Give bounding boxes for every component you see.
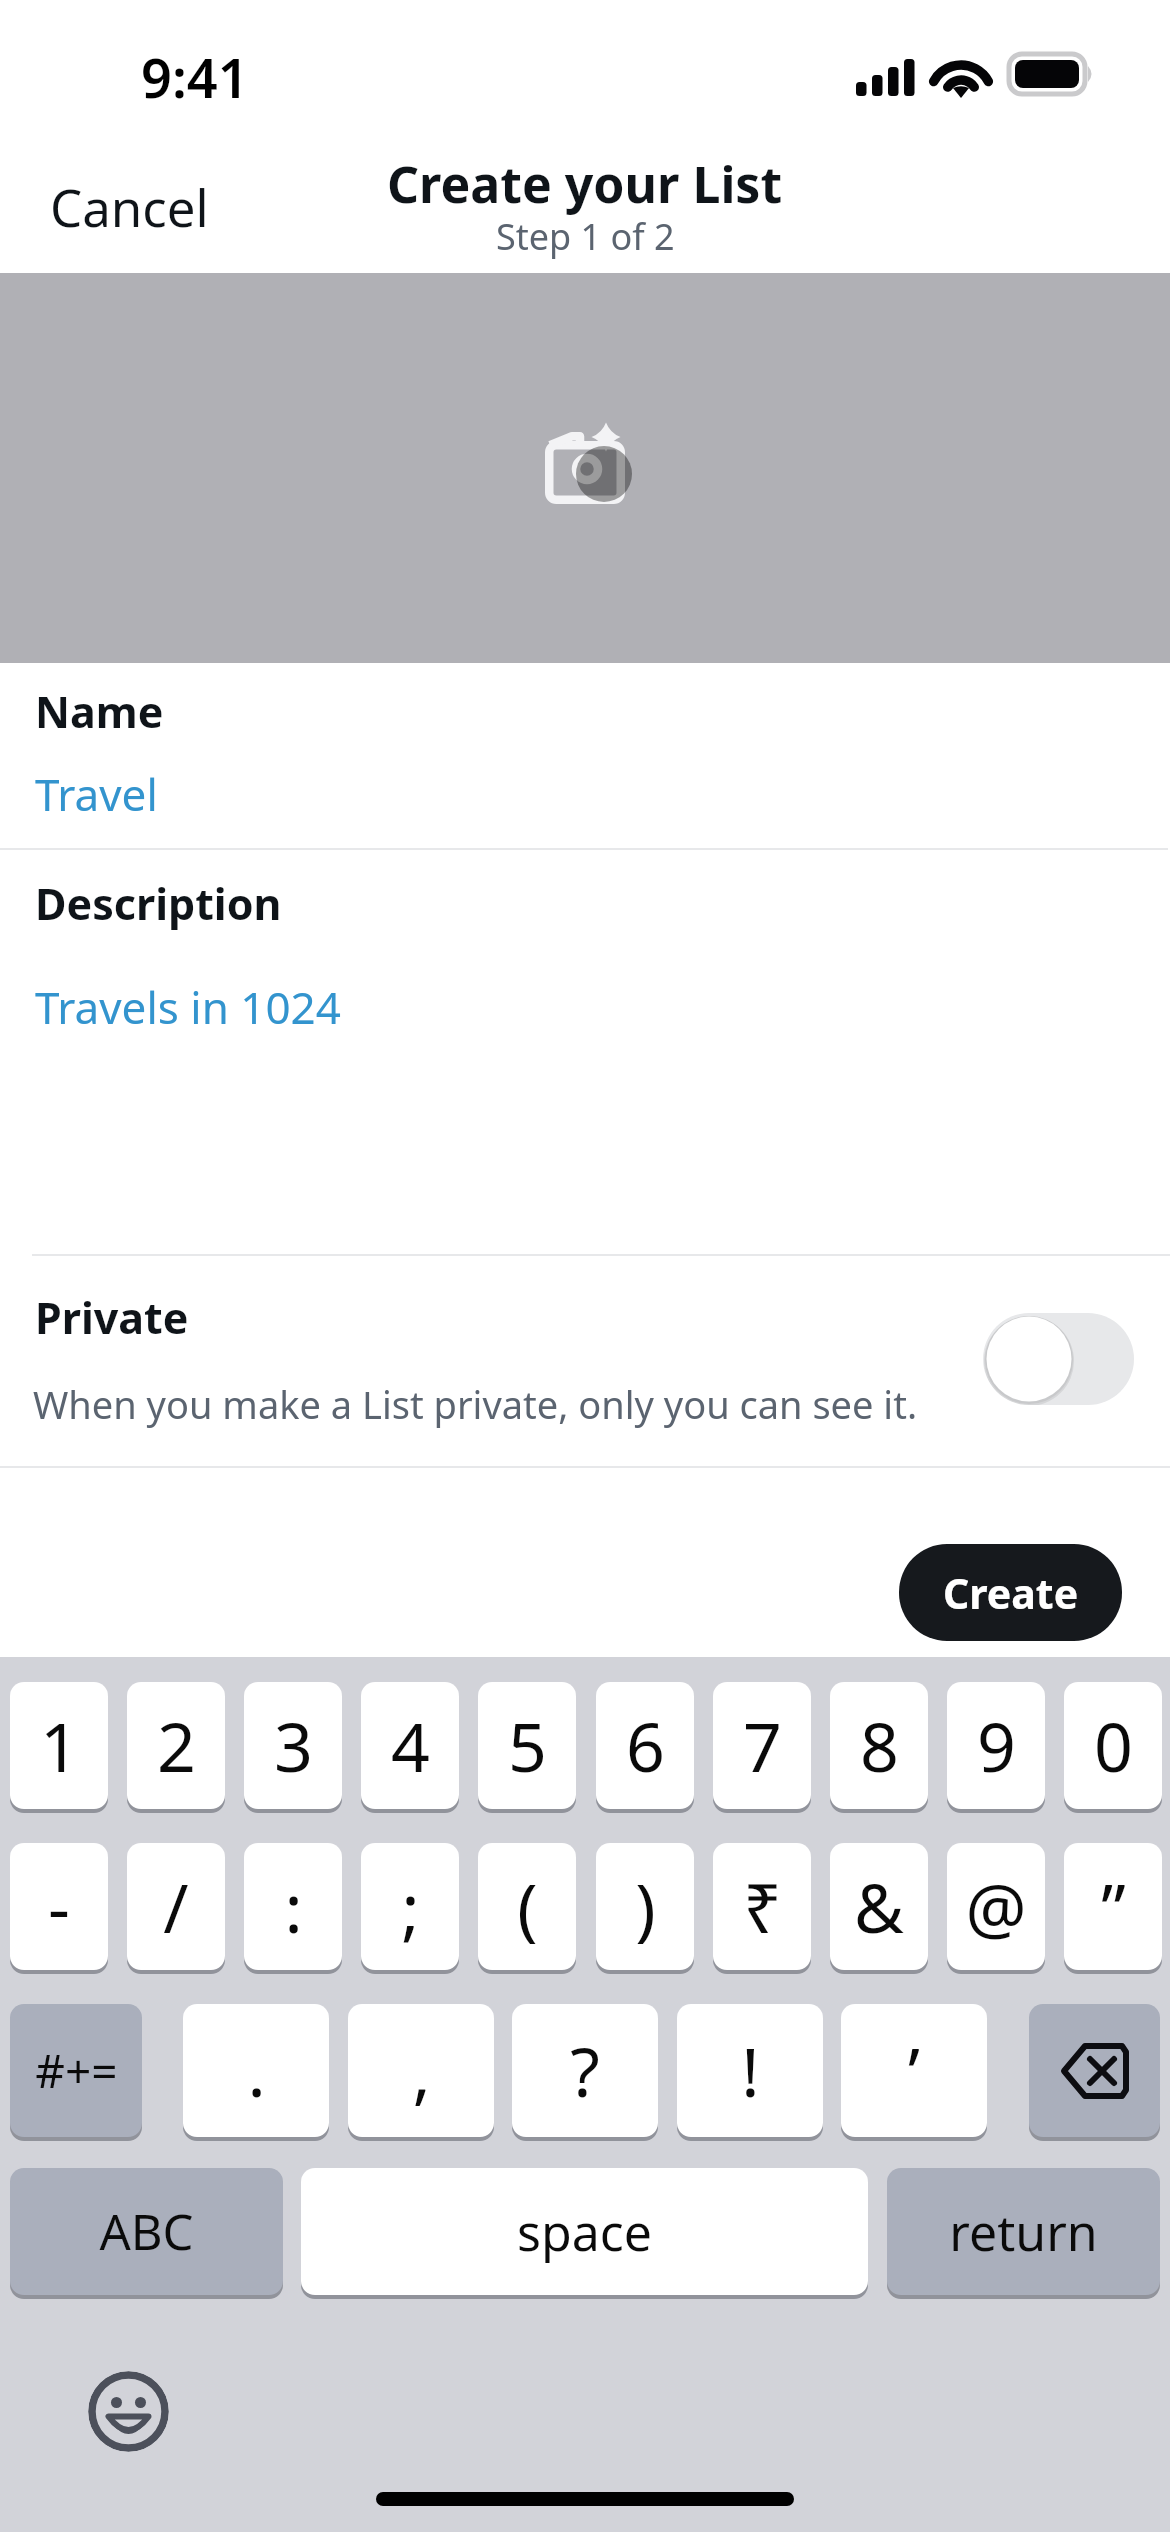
button[interactable]: Delete (1029, 2004, 1160, 2137)
button[interactable]: 2 (127, 1682, 225, 1809)
button[interactable]: ” (1064, 1843, 1162, 1970)
staticText: ; (401, 1860, 420, 1953)
staticText: 1 (40, 1699, 79, 1792)
staticText: - (48, 1860, 70, 1953)
button[interactable]: ) (596, 1843, 694, 1970)
staticText: return (949, 2198, 1098, 2266)
button[interactable]: Add list photo (0, 273, 1170, 663)
button[interactable]: 5 (478, 1682, 576, 1809)
staticText: : (284, 1860, 303, 1953)
staticText: / (163, 1860, 189, 1953)
staticText: ! (741, 2024, 760, 2117)
button[interactable]: Private (0, 1252, 1170, 1462)
button[interactable]: Description (0, 849, 1170, 1251)
button[interactable]: @ (947, 1843, 1045, 1970)
staticText: 8 (860, 1699, 899, 1792)
staticText: 4 (391, 1699, 430, 1792)
staticText: space (517, 2198, 652, 2266)
staticText: @ (965, 1860, 1027, 1953)
staticText: , (412, 2024, 431, 2117)
button[interactable]: 9 (947, 1682, 1045, 1809)
staticText: 3 (274, 1699, 313, 1792)
button[interactable]: Emoji keyboard (88, 2371, 169, 2452)
staticText: Step 1 of 2 (496, 212, 675, 261)
button[interactable]: return (887, 2168, 1160, 2295)
button[interactable]: Create (899, 1544, 1122, 1641)
button[interactable]: Private toggle (983, 1313, 1134, 1405)
button[interactable]: ₹ (713, 1843, 811, 1970)
staticText: & (854, 1860, 904, 1953)
staticText: Create (943, 1565, 1079, 1621)
button[interactable]: / (127, 1843, 225, 1970)
button[interactable]: Name (0, 663, 1170, 848)
staticText: 9 (977, 1699, 1016, 1792)
button[interactable]: 7 (713, 1682, 811, 1809)
staticText: Create your List (387, 150, 783, 218)
button[interactable]: - (10, 1843, 108, 1970)
button[interactable]: Cancel (20, 160, 239, 253)
staticText: 9:41 (141, 40, 249, 114)
staticText: Travels in 1024 (35, 977, 341, 1037)
button[interactable]: space (301, 2168, 868, 2295)
staticText: ” (1101, 1860, 1126, 1953)
staticText: #+= (35, 2039, 118, 2102)
staticText: Private (35, 1288, 189, 1347)
staticText: 6 (626, 1699, 665, 1792)
staticText: 2 (157, 1699, 196, 1792)
staticText: ’ (908, 2024, 920, 2117)
button[interactable]: 4 (361, 1682, 459, 1809)
button[interactable]: : (244, 1843, 342, 1970)
staticText: ? (570, 2024, 600, 2117)
button[interactable]: 8 (830, 1682, 928, 1809)
button[interactable]: #+= (10, 2004, 142, 2137)
button[interactable]: , (348, 2004, 494, 2137)
button[interactable]: & (830, 1843, 928, 1970)
button[interactable]: 6 (596, 1682, 694, 1809)
button[interactable]: 3 (244, 1682, 342, 1809)
staticText: Name (35, 682, 164, 741)
button[interactable]: . (183, 2004, 329, 2137)
staticText: When you make a List private, only you c… (33, 1378, 918, 1430)
button[interactable]: ? (512, 2004, 658, 2137)
button[interactable]: ’ (841, 2004, 987, 2137)
staticText: 5 (508, 1699, 547, 1792)
staticText: Cancel (50, 172, 209, 241)
staticText: Travel (35, 764, 158, 824)
button[interactable]: ( (478, 1843, 576, 1970)
staticText: ( (517, 1860, 538, 1953)
button[interactable]: ! (677, 2004, 823, 2137)
staticText: 0 (1094, 1699, 1133, 1792)
staticText: ₹ (743, 1860, 782, 1953)
button[interactable]: ; (361, 1843, 459, 1970)
button[interactable]: 0 (1064, 1682, 1162, 1809)
button[interactable]: 1 (10, 1682, 108, 1809)
staticText: 7 (743, 1699, 782, 1792)
staticText: . (247, 2024, 266, 2117)
staticText: Description (35, 874, 282, 933)
staticText: ) (635, 1860, 656, 1953)
button[interactable]: ABC (10, 2168, 283, 2295)
staticText: ABC (99, 2198, 194, 2265)
